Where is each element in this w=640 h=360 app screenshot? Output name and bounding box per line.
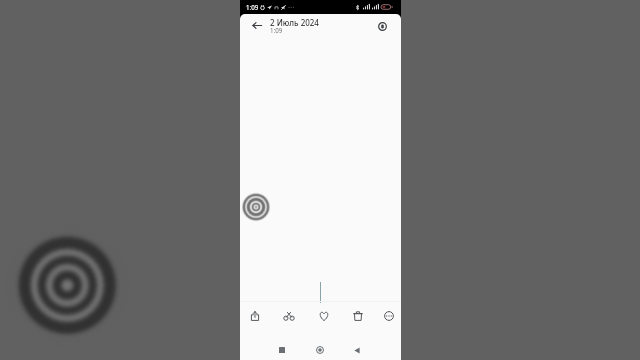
button[interactable]: Trim bbox=[278, 305, 300, 327]
button[interactable]: Back bbox=[249, 17, 265, 33]
staticText: 1:09 bbox=[270, 26, 283, 34]
button[interactable]: Delete bbox=[347, 305, 369, 327]
button[interactable]: Home bbox=[311, 341, 329, 359]
button[interactable]: Share bbox=[244, 305, 266, 327]
button[interactable]: Back bbox=[348, 341, 366, 359]
staticText: 1:09 bbox=[246, 3, 259, 11]
button[interactable]: Favorite bbox=[313, 305, 335, 327]
button[interactable]: Recents bbox=[273, 341, 291, 359]
button[interactable]: More bbox=[378, 305, 400, 327]
staticText: 2 Июль 2024 bbox=[270, 17, 319, 28]
button[interactable]: Lock bbox=[375, 19, 389, 33]
